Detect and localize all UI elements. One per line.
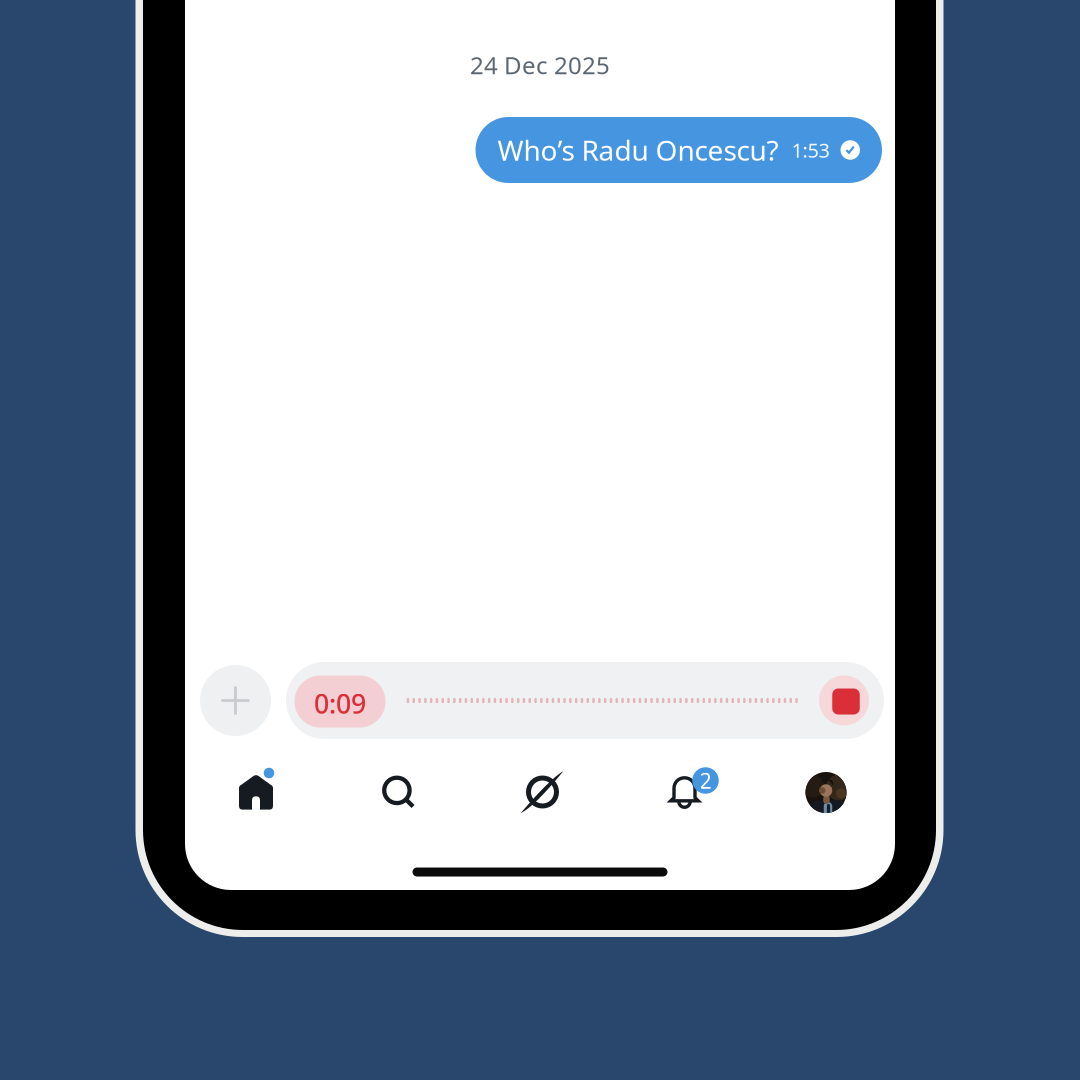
button[interactable]: Home xyxy=(185,735,327,850)
button[interactable]: Attach xyxy=(200,665,271,736)
staticText: 2 xyxy=(699,766,711,795)
staticText: 1:53 xyxy=(791,137,829,163)
button[interactable]: Who’s Radu Oncescu? xyxy=(475,117,882,183)
button[interactable]: Notifications xyxy=(611,735,753,850)
button[interactable]: Search xyxy=(327,735,469,850)
staticText: 0:09 xyxy=(314,686,366,721)
button[interactable]: Discover xyxy=(469,735,611,850)
button[interactable]: Stop recording xyxy=(819,675,869,725)
staticText: 24 Dec 2025 xyxy=(470,49,610,81)
staticText: Who’s Radu Oncescu? xyxy=(497,131,778,169)
button[interactable]: Profile xyxy=(753,735,895,850)
